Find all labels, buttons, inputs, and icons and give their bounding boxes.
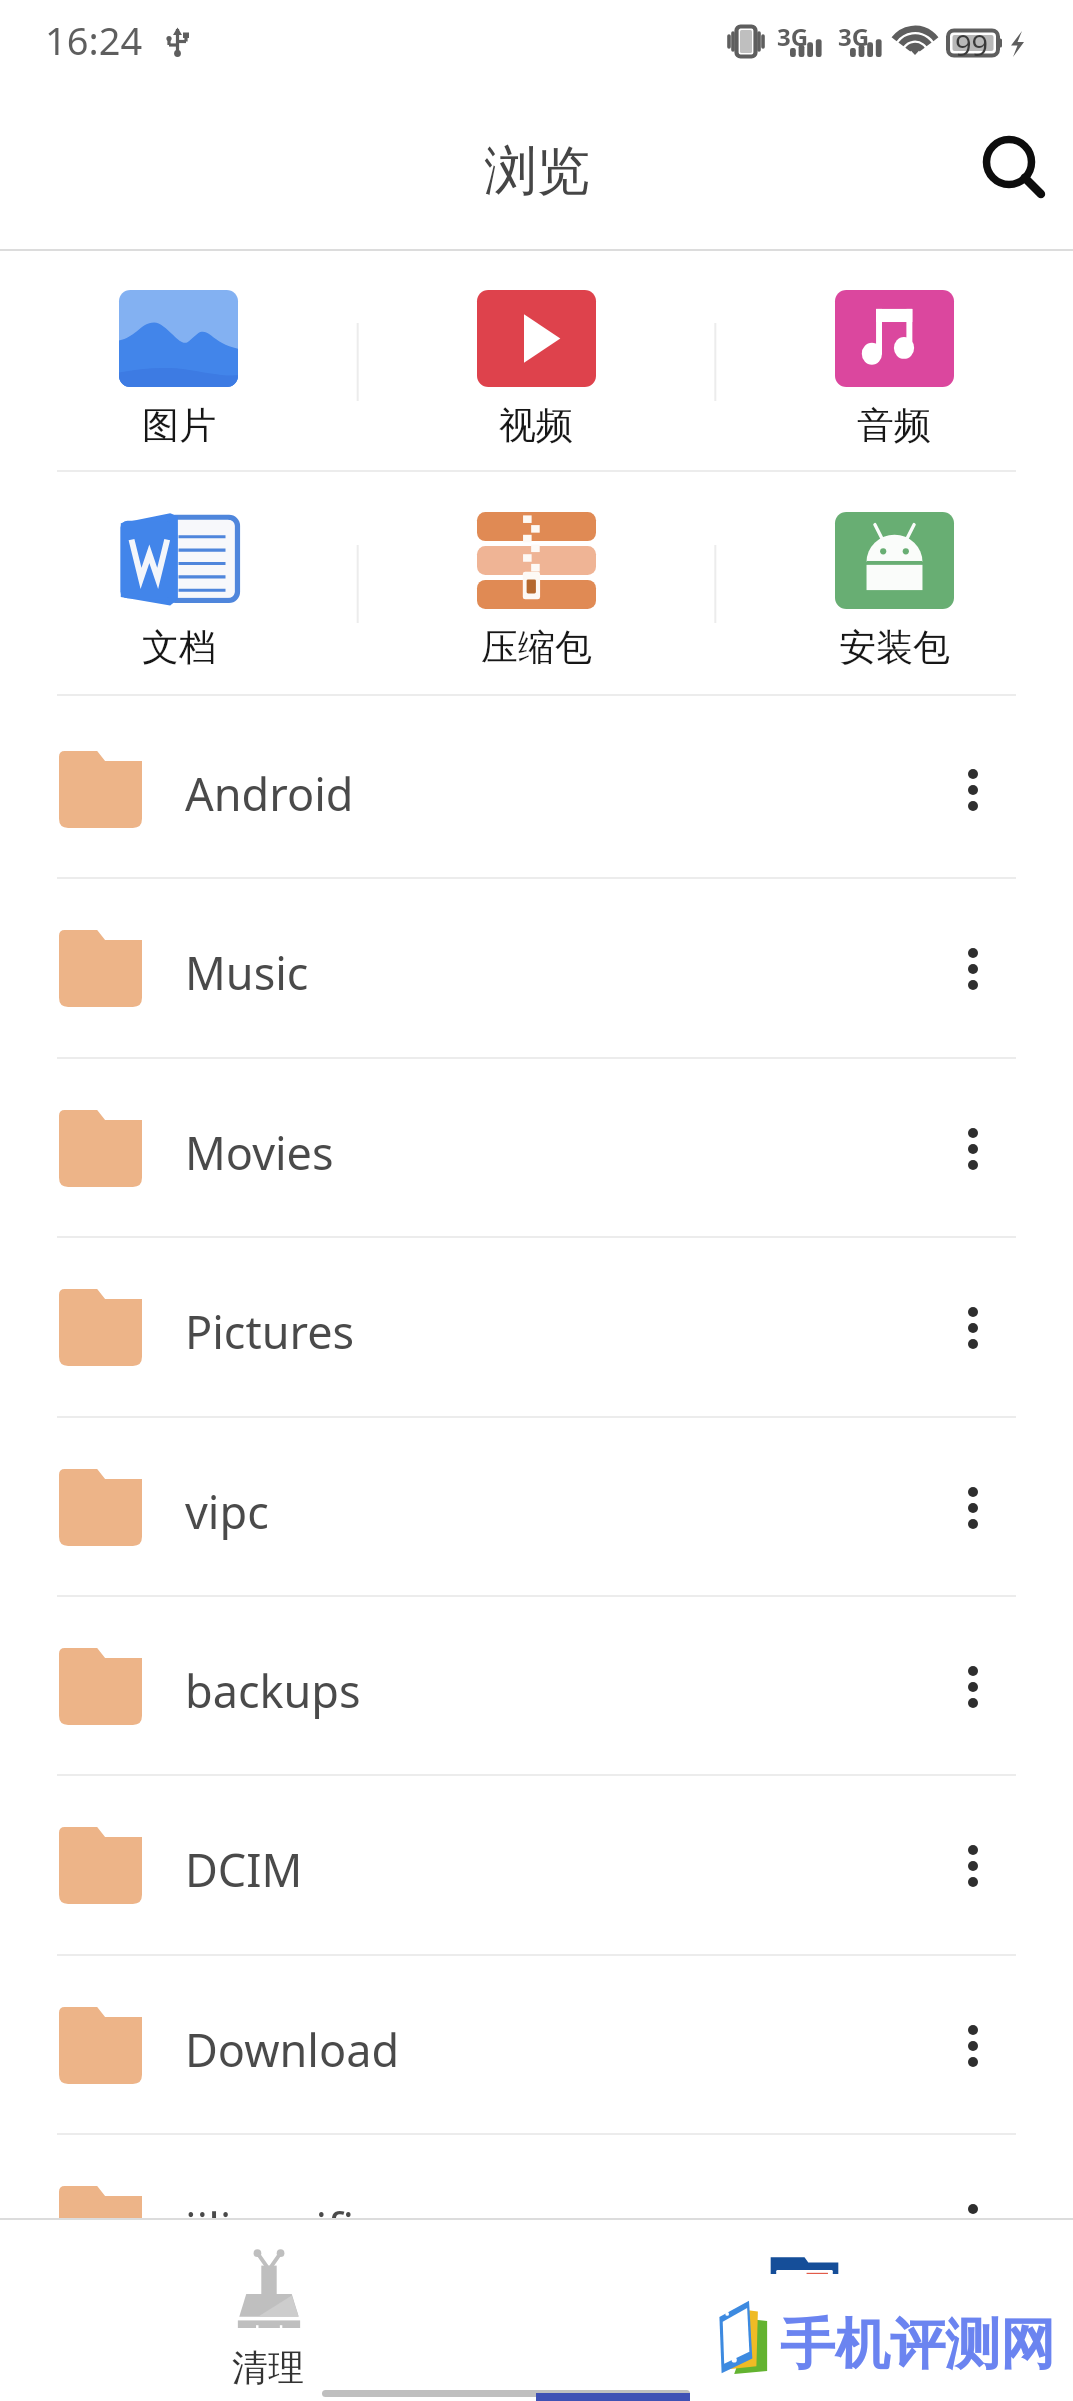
button[interactable]: Pictures	[0, 1238, 1073, 1417]
staticText: Music	[185, 942, 309, 1003]
staticText: 文档	[142, 624, 216, 671]
button[interactable]: 视频	[357, 251, 715, 472]
button[interactable]: More options	[913, 1986, 1033, 2106]
button[interactable]: 安装包	[715, 473, 1073, 694]
button[interactable]: More options	[913, 1089, 1033, 1209]
staticText: 压缩包	[481, 624, 592, 671]
button[interactable]: vipc	[0, 1418, 1073, 1597]
staticText: 99	[955, 25, 989, 64]
button[interactable]: 图片	[0, 251, 357, 472]
button[interactable]: Search	[963, 119, 1063, 219]
button[interactable]: More options	[913, 1627, 1033, 1747]
button[interactable]: Music	[0, 879, 1073, 1058]
staticText: 安装包	[839, 624, 950, 671]
staticText: iiliar.wifi	[185, 2198, 355, 2259]
staticText: 浏览	[484, 138, 590, 205]
button[interactable]: backups	[0, 1597, 1073, 1776]
button[interactable]: 音频	[715, 251, 1073, 472]
staticText: Movies	[185, 1122, 334, 1183]
staticText: Pictures	[185, 1301, 355, 1362]
staticText: 音频	[857, 402, 931, 449]
button[interactable]: More options	[913, 730, 1033, 850]
staticText: 16:24	[45, 14, 143, 66]
staticText: Android	[185, 763, 354, 824]
button[interactable]: More options	[913, 909, 1033, 1029]
button[interactable]: Movies	[0, 1059, 1073, 1238]
staticText: 清理	[232, 2345, 304, 2390]
staticText: DCIM	[185, 1839, 303, 1900]
staticText: 3G	[838, 20, 870, 53]
button[interactable]: More options	[913, 1268, 1033, 1388]
button[interactable]: More options	[913, 2165, 1033, 2285]
staticText: 手机评测网	[780, 2310, 1055, 2379]
staticText: 文件	[768, 2345, 840, 2390]
button[interactable]: Download	[0, 1956, 1073, 2135]
button[interactable]: Android	[0, 700, 1073, 879]
staticText: 3G	[777, 20, 809, 53]
button[interactable]: More options	[913, 1806, 1033, 1926]
button[interactable]: iiliar.wifi	[0, 2135, 1073, 2314]
button[interactable]: 文件	[536, 2220, 1073, 2391]
staticText: backups	[185, 1660, 361, 1721]
button[interactable]: 清理	[0, 2220, 536, 2391]
button[interactable]: DCIM	[0, 1776, 1073, 1955]
staticText: 视频	[499, 402, 573, 449]
button[interactable]: 压缩包	[357, 473, 715, 694]
staticText: Download	[185, 2019, 400, 2080]
button[interactable]: 文档	[0, 473, 357, 694]
button[interactable]: More options	[913, 1448, 1033, 1568]
staticText: 图片	[142, 402, 216, 449]
staticText: vipc	[185, 1481, 269, 1542]
